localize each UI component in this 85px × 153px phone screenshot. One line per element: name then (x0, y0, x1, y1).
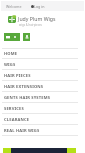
button[interactable]: GENTS HAIR SYSTEMS (2, 92, 78, 103)
staticText: REAL HAIR WIGS (4, 128, 40, 134)
button[interactable]: Log in (34, 4, 45, 9)
button[interactable]: REAL HAIR WIGS (2, 125, 78, 136)
button[interactable]: HOME (2, 48, 78, 59)
staticText: Welcome (6, 4, 22, 9)
button[interactable]: Basket (4, 33, 20, 41)
staticText: HAIR EXTENSIONS (4, 84, 44, 90)
button[interactable]: SERVICES (2, 103, 78, 114)
staticText: CLEARANCE (4, 117, 30, 123)
staticText: Judy Plum Wigs (18, 15, 56, 22)
staticText: HAIR PIECES (4, 73, 31, 79)
button[interactable]: WIGS (2, 59, 78, 70)
staticText: WIGS (4, 62, 16, 68)
staticText: HOME (4, 51, 18, 57)
button[interactable]: CLEARANCE (2, 114, 78, 125)
button[interactable]: HAIR EXTENSIONS (2, 81, 78, 92)
button[interactable]: HAIR PIECES (2, 70, 78, 81)
staticText: SERVICES (4, 106, 24, 112)
staticText: wigs & hairpieces (19, 23, 42, 27)
button[interactable]: Account (23, 33, 30, 41)
staticText: GENTS HAIR SYSTEMS (4, 95, 51, 101)
